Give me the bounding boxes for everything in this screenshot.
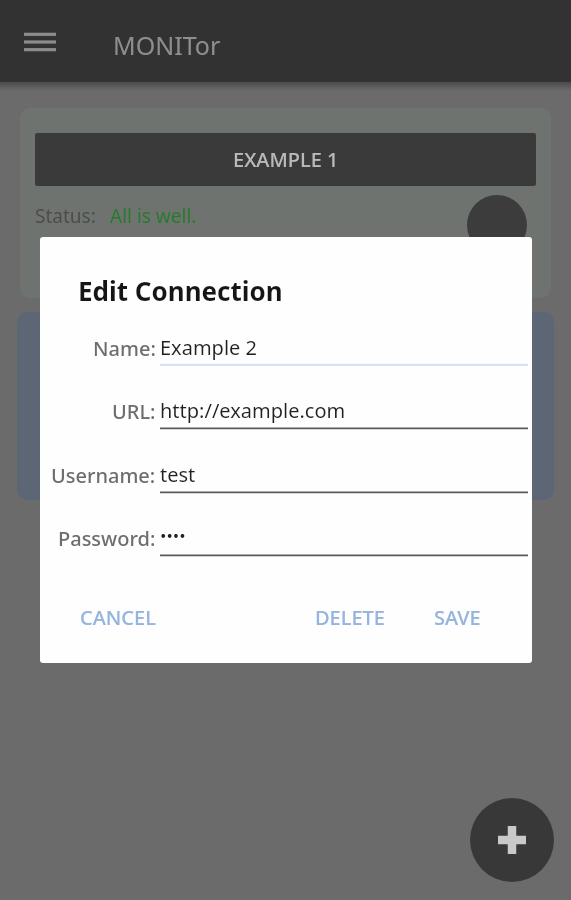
button[interactable]: EXAMPLE 1 [35,133,536,186]
staticText: MONITor [113,28,221,62]
button[interactable]: http://example.com [160,396,528,430]
button[interactable]: DELETE [301,595,447,639]
staticText: Edit Connection [78,273,283,308]
staticText: DELETE [315,604,385,631]
button[interactable]: Refresh connection [467,195,527,255]
staticText: All is well. [110,203,197,229]
button[interactable]: test [160,460,528,494]
button[interactable]: Example 2 [160,333,528,367]
button[interactable]: EXAMPLE 1 [20,108,551,298]
staticText: Username: [51,462,156,489]
staticText: Status: [35,203,96,229]
staticText: CANCEL [80,604,156,631]
button[interactable]: SAVE [420,595,520,639]
staticText: Name: [93,335,156,362]
button[interactable] [17,312,554,500]
staticText: •••• [160,524,186,547]
staticText: Example 2 [160,334,257,361]
button[interactable]: Add connection [470,798,554,882]
staticText: http://example.com [160,397,346,424]
staticText: test [160,461,196,488]
button[interactable]: •••• [160,523,528,557]
button[interactable]: CANCEL [66,595,216,639]
staticText: EXAMPLE 1 [233,146,339,173]
button[interactable]: Open navigation drawer [12,14,68,70]
staticText: Password: [58,525,156,552]
staticText: SAVE [434,604,481,631]
staticText: URL: [112,398,156,425]
